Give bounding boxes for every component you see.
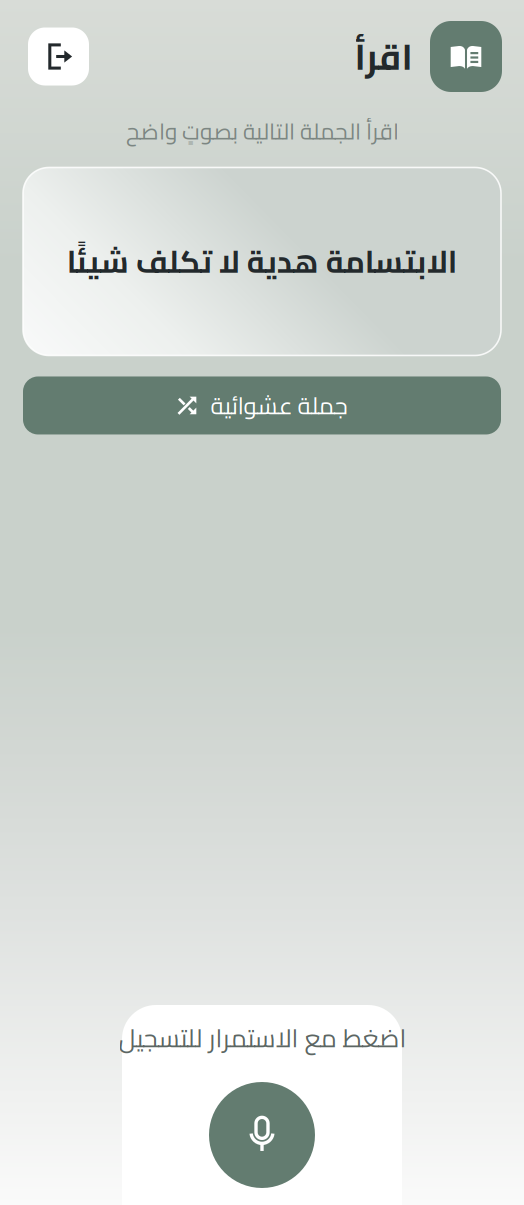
button[interactable]: تسجيل الخروج — [28, 27, 89, 85]
staticText: الابتسامة هدية لا تكلف شيئًا — [66, 233, 457, 290]
staticText: اقرأ — [354, 23, 412, 90]
staticText: جملة عشوائية — [210, 383, 347, 428]
button[interactable]: جملة عشوائية — [0, 376, 524, 434]
button[interactable]: الكتاب — [430, 21, 502, 92]
staticText: اقرأ الجملة التالية بصوتٍ واضح — [125, 110, 398, 152]
staticText: اضغط مع الاستمرار للتسجيل — [118, 1014, 406, 1062]
button[interactable]: تسجيل — [209, 1082, 315, 1188]
